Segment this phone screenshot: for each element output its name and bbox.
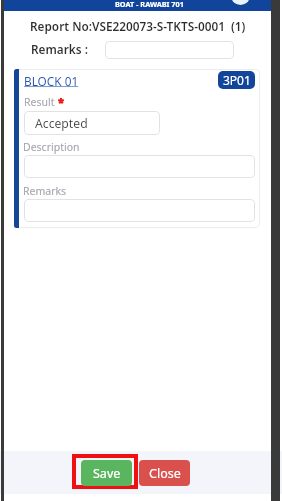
staticText: 3P01 [223, 72, 251, 88]
staticText: Description [23, 140, 80, 154]
button[interactable]: Account [231, 0, 250, 5]
staticText: BOAT - RAWABI 701 [115, 0, 184, 9]
button[interactable]: Remarks [24, 199, 255, 222]
button[interactable]: 3P01 [218, 71, 255, 89]
staticText: Close [149, 465, 181, 482]
button[interactable]: Result [24, 111, 160, 135]
button[interactable]: BLOCK 01 [24, 73, 79, 89]
staticText: Accepted [35, 115, 88, 132]
button[interactable]: Close [139, 460, 190, 486]
staticText: Save [93, 465, 121, 482]
staticText: Result [24, 95, 55, 109]
staticText: Remarks : [31, 41, 88, 57]
button[interactable]: Description [24, 155, 255, 178]
button[interactable]: Remarks field [105, 41, 234, 59]
staticText: Remarks [23, 184, 67, 198]
button[interactable]: Save [81, 460, 132, 486]
staticText: Report No:VSE220073-S-TKTS-0001 (1) [30, 18, 246, 34]
